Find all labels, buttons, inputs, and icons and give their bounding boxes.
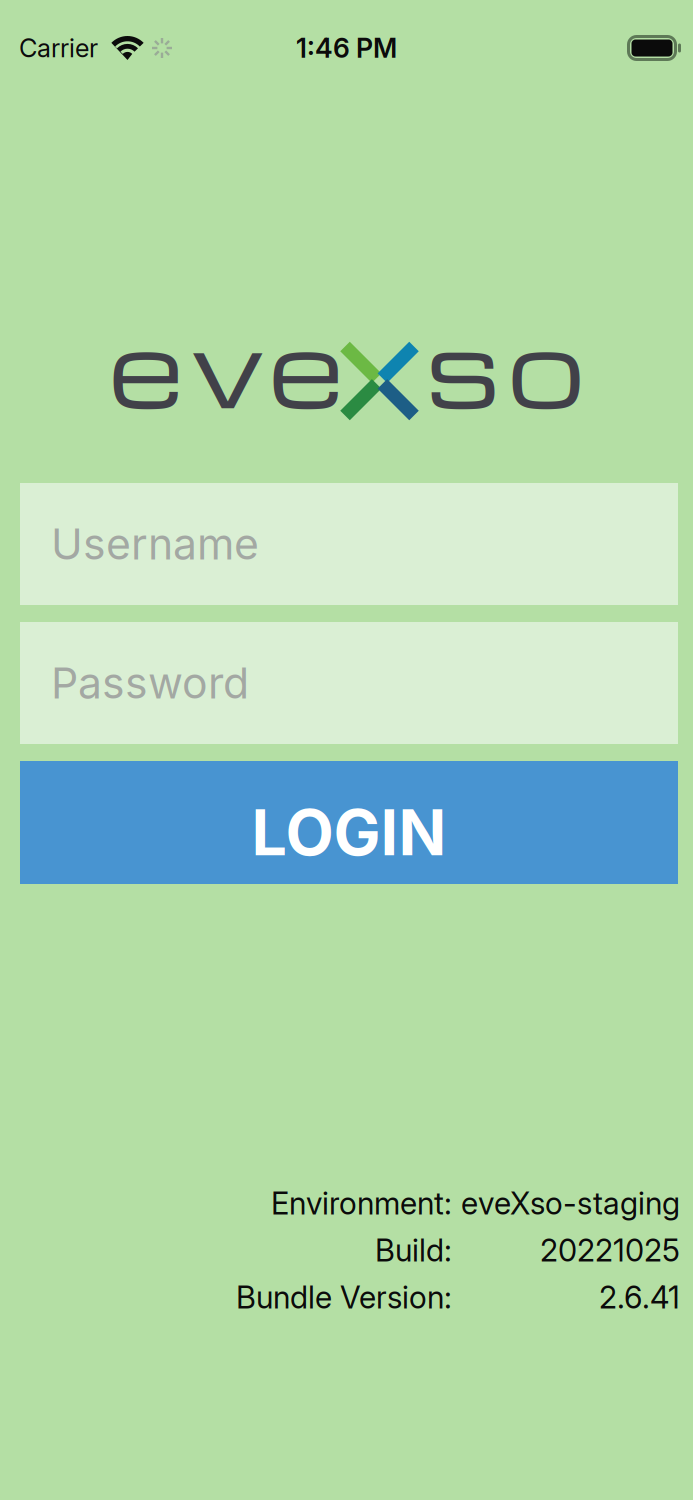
staticText: eveXso-staging (461, 1185, 680, 1222)
button[interactable]: Username (20, 483, 678, 605)
staticText: 20221025 (540, 1232, 680, 1269)
staticText: Username (51, 518, 259, 570)
staticText: Environment: (271, 1185, 452, 1222)
button[interactable]: LOGIN (20, 761, 678, 884)
staticText: so (425, 296, 584, 434)
staticText: 1:46 PM (296, 32, 397, 64)
staticText: Password (51, 657, 249, 709)
staticText: Build: (375, 1232, 452, 1269)
staticText: 2.6.41 (599, 1279, 680, 1316)
button[interactable]: Password (20, 622, 678, 744)
staticText: Bundle Version: (236, 1279, 452, 1316)
staticText: eve (109, 296, 343, 434)
staticText: LOGIN (251, 795, 446, 870)
staticText: Carrier (19, 33, 98, 63)
